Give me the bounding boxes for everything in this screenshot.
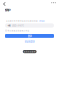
staticText: 《协议》 xyxy=(38,20,46,22)
button[interactable]: Back xyxy=(1,1,7,7)
staticText: +86 xyxy=(7,24,10,27)
staticText: 新用户 xyxy=(4,8,10,12)
button[interactable]: 验证码登录 xyxy=(24,40,36,43)
staticText: 请输入手机号 xyxy=(12,24,24,27)
button[interactable]: More options xyxy=(50,0,57,5)
staticText: 未注册手机号登录后自动注册并同意 xyxy=(6,20,38,22)
button[interactable]: 登录 xyxy=(5,34,54,38)
staticText: 登录 xyxy=(27,34,31,38)
staticText: 其他方式登录 xyxy=(24,50,36,53)
staticText: 我已阅读并同意用户协议 xyxy=(8,29,30,32)
staticText: 验证码登录 xyxy=(25,40,35,43)
button[interactable]: 其他方式登录 xyxy=(23,50,37,53)
button[interactable]: 我已阅读并同意用户协议 xyxy=(5,29,30,32)
